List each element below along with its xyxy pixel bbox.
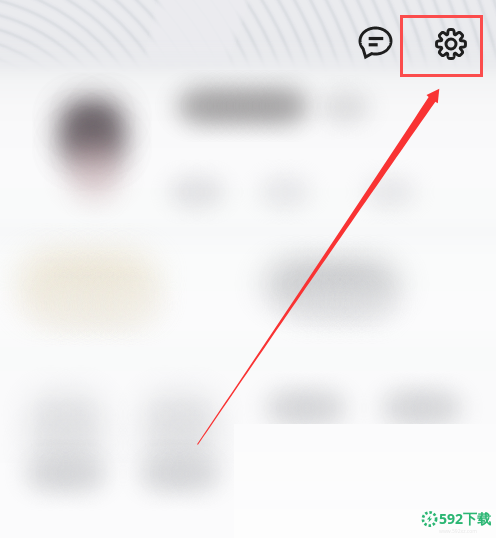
button[interactable]: Settings xyxy=(433,26,469,62)
button[interactable]: Coupons xyxy=(262,382,348,436)
staticText: www.592xz.com xyxy=(439,528,477,535)
button[interactable]: Profile xyxy=(16,84,346,204)
button[interactable]: Likes xyxy=(358,170,434,216)
button[interactable]: History xyxy=(138,398,224,494)
button[interactable]: Favourites xyxy=(24,398,110,494)
button[interactable]: Orders xyxy=(258,238,480,342)
button[interactable]: Messages xyxy=(358,24,393,59)
button[interactable]: Following xyxy=(166,170,242,216)
staticText: 592下载 xyxy=(439,509,492,528)
button[interactable]: Wallet xyxy=(12,238,234,342)
button[interactable]: Followers xyxy=(254,170,330,216)
button[interactable]: Help xyxy=(378,382,464,436)
